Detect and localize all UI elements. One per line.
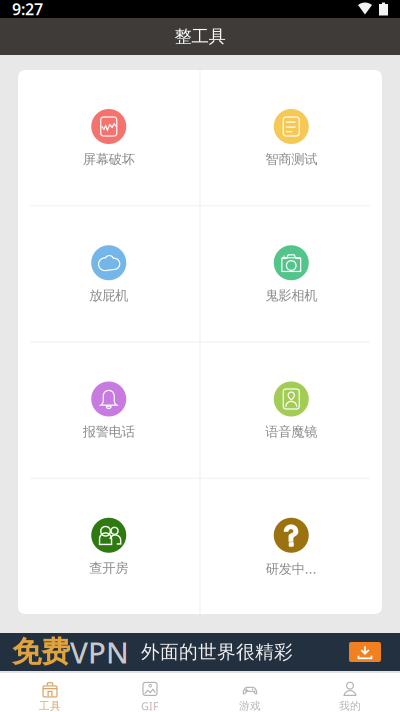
button[interactable]: 免费 bbox=[0, 633, 400, 671]
staticText: VPN bbox=[70, 632, 129, 671]
button[interactable]: 报警电话 bbox=[18, 342, 199, 478]
staticText: 语音魔镜 bbox=[265, 423, 317, 440]
staticText: 放屁机 bbox=[89, 287, 128, 304]
staticText: 我的 bbox=[339, 699, 361, 712]
staticText: 整工具 bbox=[174, 26, 225, 47]
staticText: 免费 bbox=[12, 634, 70, 670]
staticText: 工具 bbox=[39, 699, 61, 712]
staticText: 查开房 bbox=[89, 560, 128, 576]
button[interactable]: 研发中... bbox=[200, 479, 382, 614]
button[interactable]: 游戏 bbox=[200, 673, 300, 712]
button[interactable]: GIF bbox=[100, 673, 200, 712]
staticText: 游戏 bbox=[239, 699, 261, 712]
button[interactable]: 放屁机 bbox=[18, 206, 199, 341]
staticText: GIF bbox=[141, 699, 159, 712]
staticText: 9:27 bbox=[12, 0, 43, 20]
button[interactable]: 工具 bbox=[0, 673, 100, 712]
button[interactable]: 语音魔镜 bbox=[200, 342, 382, 478]
staticText: 屏幕破坏 bbox=[83, 151, 135, 167]
button[interactable]: 查开房 bbox=[18, 479, 199, 614]
button[interactable]: 我的 bbox=[300, 673, 400, 712]
staticText: 鬼影相机 bbox=[265, 287, 317, 304]
staticText: 报警电话 bbox=[83, 423, 135, 440]
button[interactable]: 鬼影相机 bbox=[200, 206, 382, 341]
staticText: 智商测试 bbox=[265, 151, 317, 167]
button[interactable]: 屏幕破坏 bbox=[18, 70, 199, 205]
button[interactable]: 智商测试 bbox=[200, 70, 382, 205]
staticText: 外面的世界很精彩 bbox=[141, 640, 293, 663]
staticText: 研发中... bbox=[266, 560, 317, 577]
